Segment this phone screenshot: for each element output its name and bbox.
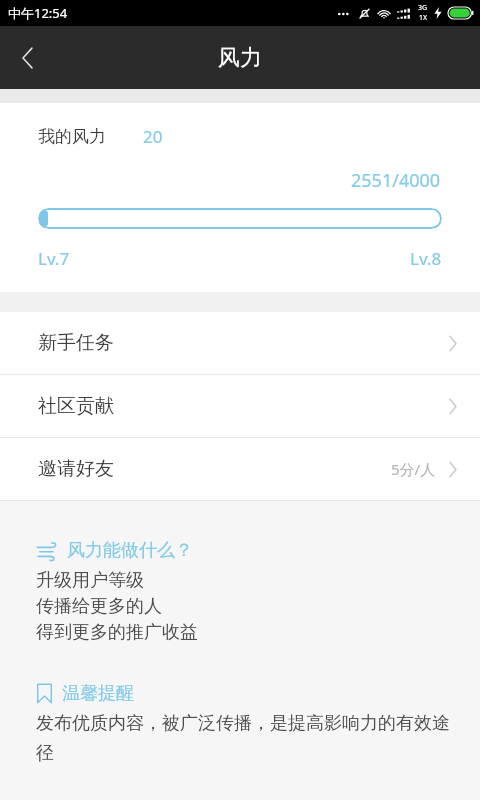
staticText: Lv.8 [410,247,442,270]
staticText: 温馨提醒 [62,682,134,705]
staticText: 升级用户等级 [36,569,144,592]
staticText: 风力 [218,44,262,72]
staticText: 2551/4000 [351,168,441,193]
staticText: 发布优质内容，被广泛传播，是提高影响力的有效途径 [36,712,456,764]
staticText: 邀请好友 [38,457,114,481]
staticText: 中午12:54 [8,4,68,22]
staticText: 风力能做什么？ [67,539,193,562]
staticText: 得到更多的推广收益 [36,621,198,644]
staticText: 20 [143,125,163,148]
button[interactable]: Back [0,30,56,86]
staticText: 3G [418,3,428,13]
staticText: 5分/人 [391,459,436,479]
button[interactable]: 社区贡献 [0,375,480,437]
staticText: 我的风力 [38,126,106,147]
staticText: 传播给更多的人 [36,595,162,618]
staticText: Lv.7 [38,247,70,270]
staticText: 新手任务 [38,331,114,355]
button[interactable]: 新手任务 [0,312,480,374]
button[interactable]: 邀请好友 [0,438,480,500]
staticText: 1X [419,13,428,23]
staticText: 社区贡献 [38,394,114,418]
